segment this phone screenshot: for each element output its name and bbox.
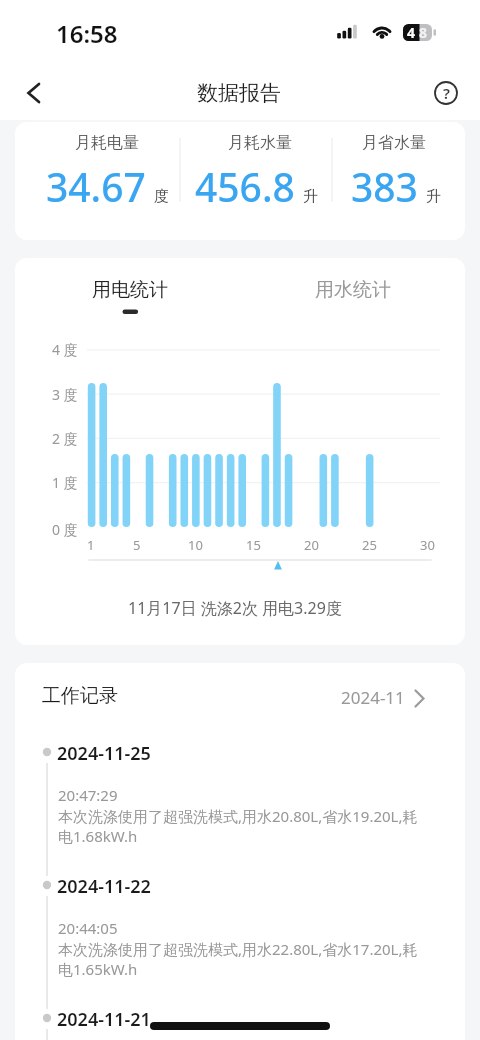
staticText: 0 度 <box>52 520 78 539</box>
button[interactable] <box>16 73 56 113</box>
staticText: 工作记录 <box>42 684 118 708</box>
staticText: 升 <box>303 187 318 206</box>
button[interactable] <box>30 868 450 990</box>
staticText: 月省水量 <box>362 133 426 153</box>
staticText: 3 度 <box>52 385 78 404</box>
staticText: 2024-11 <box>341 686 405 709</box>
button[interactable] <box>30 735 450 857</box>
staticText: 电1.65kW.h <box>58 959 138 979</box>
staticText: 升 <box>426 187 441 206</box>
staticText: 用电统计 <box>92 278 168 302</box>
staticText: 电1.68kW.h <box>58 826 138 846</box>
staticText: 456.8 <box>195 160 295 213</box>
staticText: ? <box>443 83 450 103</box>
staticText: 本次洗涤使用了超强洗模式,用水22.80L,省水17.20L,耗 <box>58 939 418 959</box>
button[interactable] <box>428 75 464 111</box>
staticText: 1 <box>87 536 95 554</box>
staticText: 度 <box>154 187 169 206</box>
staticText: 30 <box>420 536 435 554</box>
button[interactable]: 用水统计 <box>263 267 443 313</box>
button[interactable] <box>15 122 465 240</box>
staticText: 20:44:05 <box>58 918 118 938</box>
staticText: 2024-11-25 <box>57 741 151 766</box>
staticText: 用水统计 <box>315 278 391 302</box>
staticText: 数据报告 <box>197 80 281 106</box>
staticText: 2 度 <box>52 429 78 448</box>
staticText: 15 <box>246 536 261 554</box>
staticText: 2024-11-21 <box>57 1007 151 1032</box>
staticText: 本次洗涤使用了超强洗模式,用水20.80L,省水19.20L,耗 <box>58 806 418 826</box>
staticText: 2024-11-22 <box>57 874 151 899</box>
button[interactable]: 用电统计 <box>40 267 220 313</box>
staticText: 10 <box>188 536 203 554</box>
staticText: 25 <box>362 536 377 554</box>
staticText: 月耗电量 <box>75 133 139 153</box>
button[interactable]: 2024-11 <box>295 677 405 717</box>
staticText: 20:47:29 <box>58 785 118 805</box>
staticText: 383 <box>351 160 418 213</box>
staticText: 20 <box>304 536 319 554</box>
staticText: 16:58 <box>56 17 118 50</box>
staticText: 月耗水量 <box>228 133 292 153</box>
staticText: 5 <box>133 536 141 554</box>
staticText: 8 <box>419 23 428 42</box>
staticText: 1 度 <box>52 473 78 492</box>
staticText: 11月17日 洗涤2次 用电3.29度 <box>128 597 342 619</box>
staticText: 4 <box>407 23 416 42</box>
staticText: 4 度 <box>52 340 78 359</box>
staticText: 34.67 <box>46 160 146 213</box>
